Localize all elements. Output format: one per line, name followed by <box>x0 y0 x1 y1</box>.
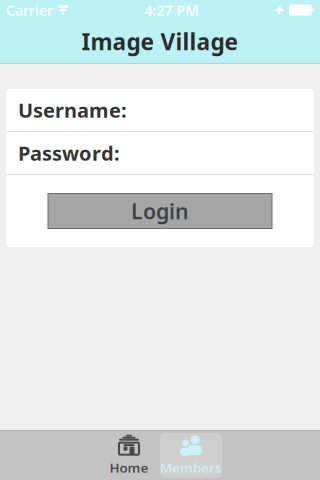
button[interactable]: Home <box>98 433 160 478</box>
staticText: Image Village <box>81 26 238 56</box>
staticText: Members <box>160 459 222 476</box>
button[interactable]: Login <box>6 193 314 228</box>
button[interactable]: Members <box>160 433 222 478</box>
staticText: Home <box>109 459 148 476</box>
staticText: Username: <box>18 97 127 123</box>
staticText: 4:27 PM <box>144 0 199 20</box>
staticText: Password: <box>18 140 120 166</box>
staticText: Login <box>131 197 189 225</box>
staticText: Carrier <box>6 0 53 20</box>
